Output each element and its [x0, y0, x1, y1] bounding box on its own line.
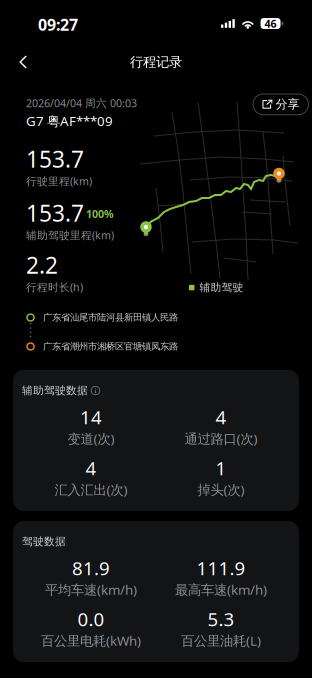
staticText: 分享 [275, 97, 299, 112]
staticText: 14 [80, 405, 102, 429]
staticText: 变道(次) [67, 430, 114, 447]
button[interactable]: 返回 [8, 46, 39, 78]
staticText: 广东省汕尾市陆河县新田镇人民路 [43, 312, 178, 323]
staticText: 广东省潮州市湘桥区官塘镇凤东路 [43, 341, 178, 352]
staticText: 通过路口(次) [184, 430, 257, 447]
staticText: 81.9 [72, 556, 110, 580]
staticText: 辅助驾驶里程(km) [26, 228, 114, 242]
staticText: 最高车速(km/h) [175, 581, 267, 598]
staticText: G7 粤AF***09 [26, 112, 113, 130]
staticText: 153.7 [26, 144, 84, 174]
staticText: 46 [265, 16, 277, 31]
staticText: 辅助驾驶数据 [22, 384, 88, 397]
staticText: 行驶里程(km) [26, 174, 92, 188]
staticText: 平均车速(km/h) [45, 581, 137, 598]
staticText: 掉头(次) [197, 481, 244, 498]
staticText: 153.7 [26, 198, 84, 228]
button[interactable]: 分享 [253, 94, 308, 115]
staticText: 0.0 [77, 607, 104, 631]
staticText: 09:27 [38, 14, 78, 35]
staticText: 百公里油耗(L) [181, 632, 261, 649]
staticText: 汇入汇出(次) [54, 481, 127, 498]
staticText: 2026/04/04 周六 00:03 [26, 96, 137, 110]
staticText: 辅助驾驶 [199, 281, 243, 294]
staticText: 行程记录 [130, 54, 182, 70]
staticText: 4 [85, 456, 96, 480]
staticText: 1 [215, 456, 226, 480]
staticText: 100% [86, 207, 114, 221]
staticText: 行程时长(h) [26, 280, 83, 294]
staticText: 111.9 [196, 556, 245, 580]
staticText: 驾驶数据 [22, 535, 66, 548]
staticText: 5.3 [207, 607, 234, 631]
staticText: 4 [215, 405, 226, 429]
staticText: 百公里电耗(kWh) [41, 632, 141, 649]
staticText: 2.2 [26, 250, 58, 280]
